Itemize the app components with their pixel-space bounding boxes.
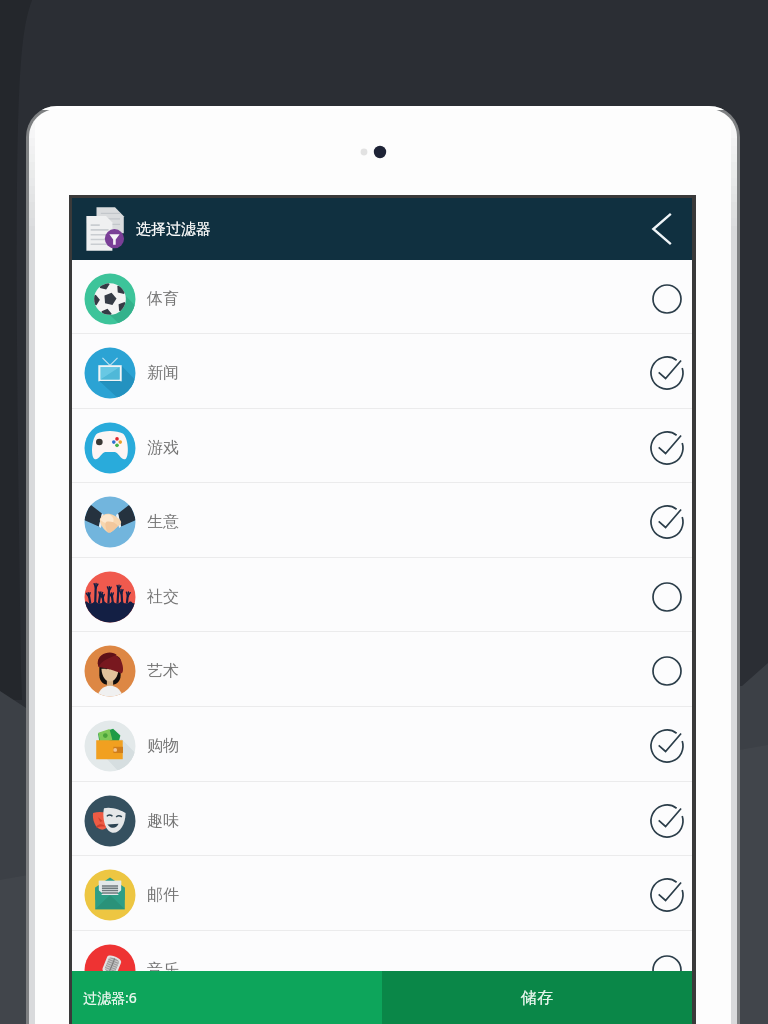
button[interactable]: 购物 <box>72 707 692 782</box>
staticText: 音乐 <box>147 960 179 980</box>
button[interactable]: 过滤器:6 <box>72 971 382 1024</box>
button[interactable]: Back <box>634 201 690 257</box>
staticText: 艺术 <box>147 661 179 681</box>
staticText: 过滤器:6 <box>83 988 137 1007</box>
button[interactable]: 生意 <box>72 483 692 558</box>
staticText: 储存 <box>521 988 553 1008</box>
staticText: 购物 <box>147 736 179 756</box>
button[interactable]: 艺术 <box>72 632 692 707</box>
button[interactable]: 社交 <box>72 558 692 632</box>
staticText: 游戏 <box>147 438 179 458</box>
staticText: 邮件 <box>147 885 179 905</box>
button[interactable]: 新闻 <box>72 334 692 409</box>
button[interactable]: 储存 <box>382 971 692 1024</box>
button[interactable]: 体育 <box>72 260 692 334</box>
staticText: 趣味 <box>147 811 179 831</box>
staticText: 选择过滤器 <box>136 220 211 239</box>
button[interactable]: 邮件 <box>72 856 692 931</box>
staticText: 体育 <box>147 289 179 309</box>
button[interactable]: 趣味 <box>72 782 692 856</box>
button[interactable]: 游戏 <box>72 409 692 483</box>
staticText: 生意 <box>147 512 179 532</box>
staticText: 社交 <box>147 587 179 607</box>
button[interactable]: 音乐 <box>72 931 692 1006</box>
staticText: 新闻 <box>147 363 179 383</box>
